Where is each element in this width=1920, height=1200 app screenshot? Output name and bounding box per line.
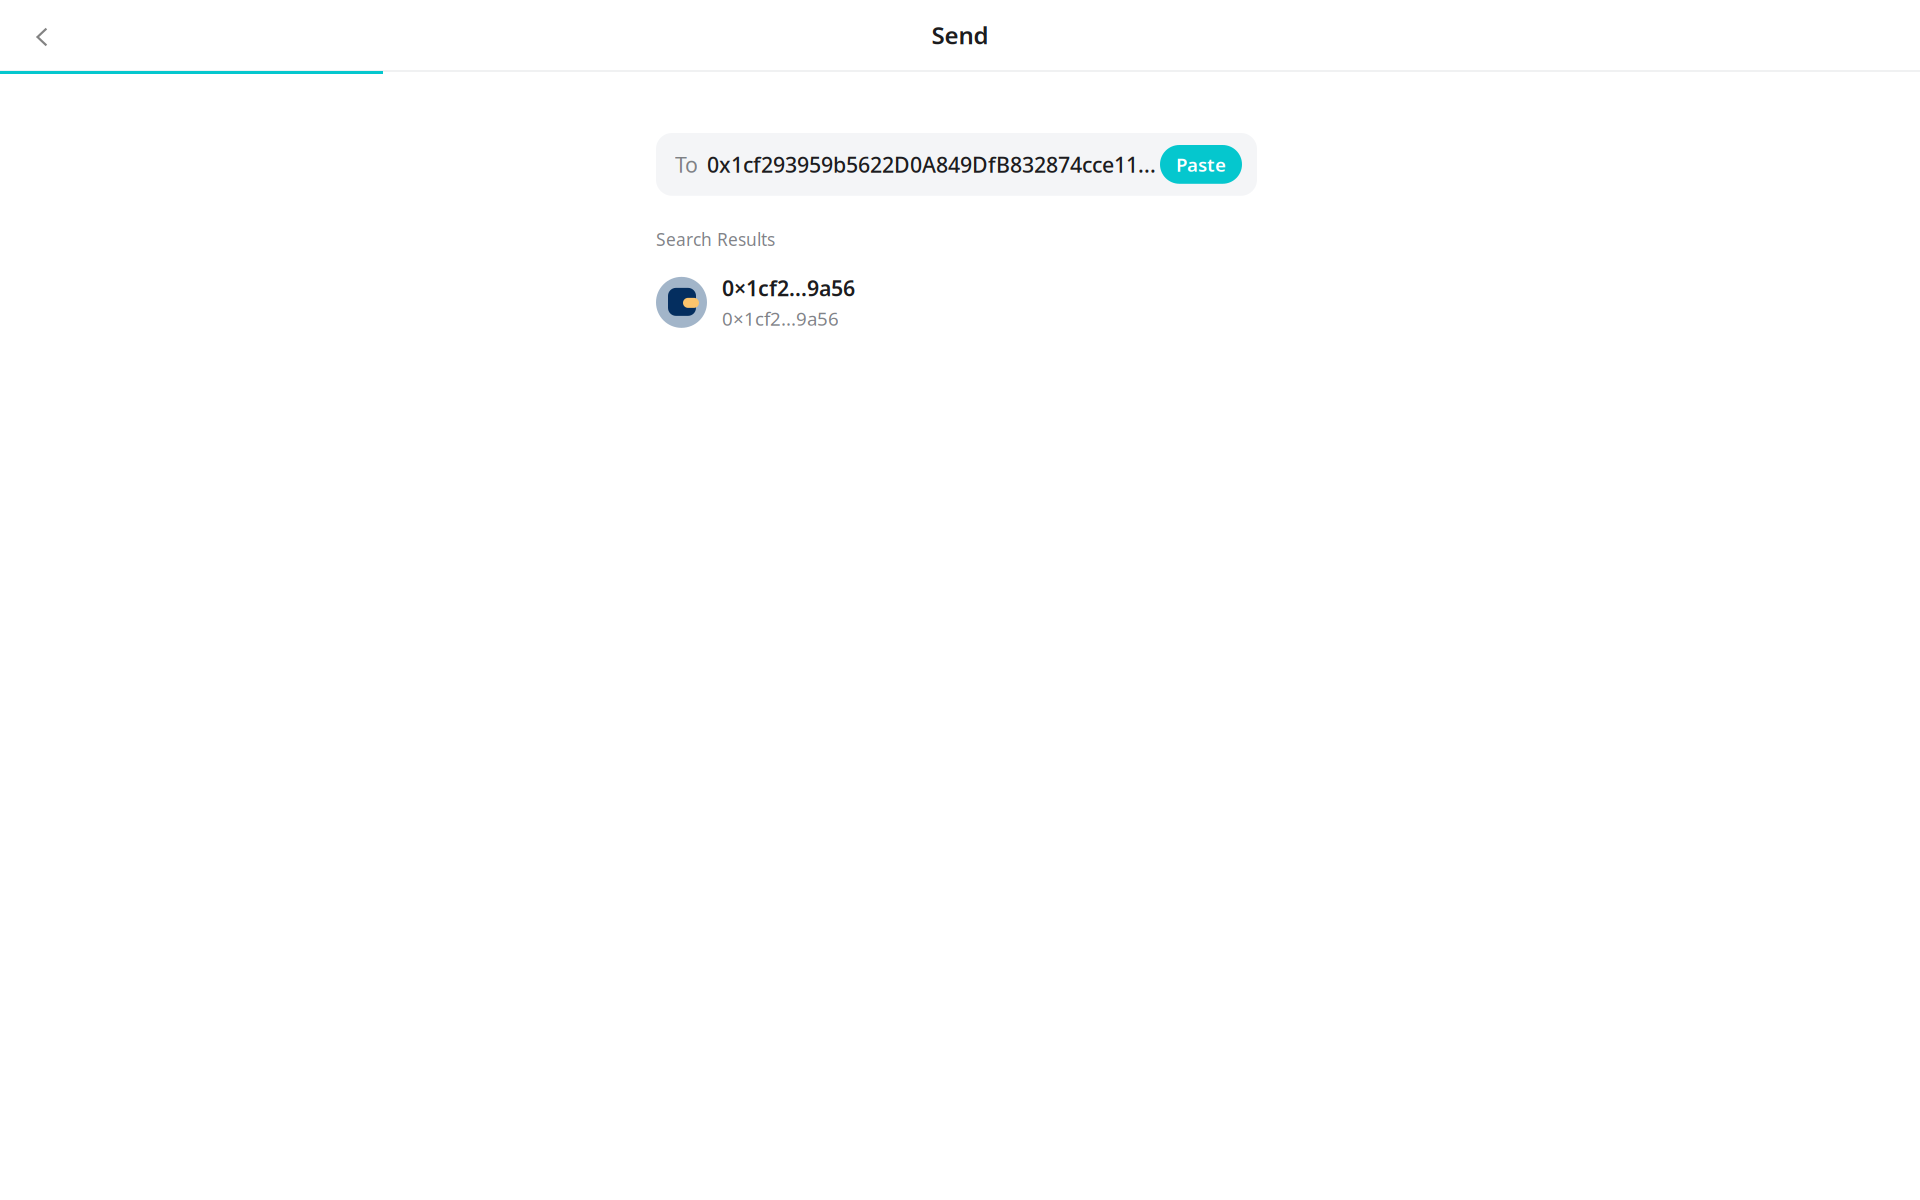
staticText: 0x1cf293959b5622D0A849DfB832874cce11... bbox=[707, 150, 1156, 178]
button[interactable]: Back bbox=[0, 11, 64, 59]
staticText: Paste bbox=[1176, 152, 1226, 177]
button[interactable]: Paste bbox=[1160, 145, 1242, 184]
staticText: 0×1cf2...9a56 bbox=[722, 306, 839, 331]
staticText: To bbox=[675, 150, 698, 178]
button[interactable]: 0×1cf2...9a56 bbox=[656, 274, 1257, 331]
staticText: Send bbox=[931, 19, 988, 51]
staticText: 0×1cf2...9a56 bbox=[722, 274, 855, 302]
staticText: Search Results bbox=[656, 228, 775, 251]
